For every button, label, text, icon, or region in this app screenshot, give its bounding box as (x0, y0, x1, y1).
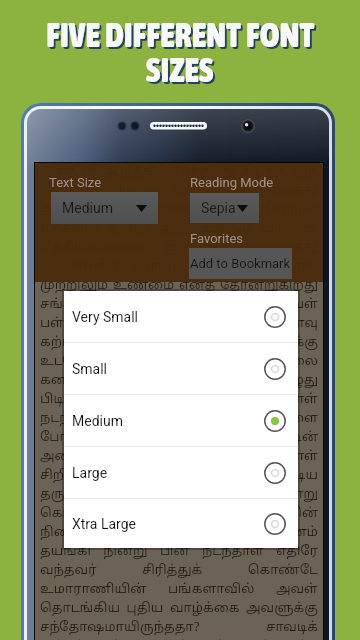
staticText: Medium (72, 413, 123, 429)
staticText: Reading Mode (190, 175, 274, 190)
button[interactable]: Medium (51, 192, 158, 224)
button[interactable]: Xtra Large (64, 499, 298, 548)
staticText: மனதின் ஆழத்தில் புதைந்து கிடந்த ஒரு நினை… (40, 164, 318, 640)
button[interactable]: Add to Bookmark (189, 248, 292, 279)
staticText: Favorites (190, 231, 243, 246)
button[interactable]: Medium (64, 395, 298, 446)
staticText: Very Small (72, 309, 139, 325)
staticText: Sepia (201, 200, 236, 216)
button[interactable]: Very Small (64, 291, 298, 342)
staticText: Add to Bookmark (190, 256, 291, 271)
staticText: Small (72, 361, 108, 377)
staticText: Large (72, 465, 108, 481)
button[interactable]: Sepia (190, 193, 259, 223)
staticText: Medium (62, 200, 113, 216)
staticText: Text Size (49, 175, 102, 190)
staticText: SIZES (148, 53, 216, 91)
staticText: SIZES (146, 51, 214, 89)
staticText: Xtra Large (72, 516, 136, 532)
button[interactable]: Large (64, 447, 298, 498)
button[interactable]: Small (64, 343, 298, 394)
staticText: FIVE DIFFERENT FONT (48, 18, 317, 56)
staticText: FIVE DIFFERENT FONT (46, 16, 315, 54)
